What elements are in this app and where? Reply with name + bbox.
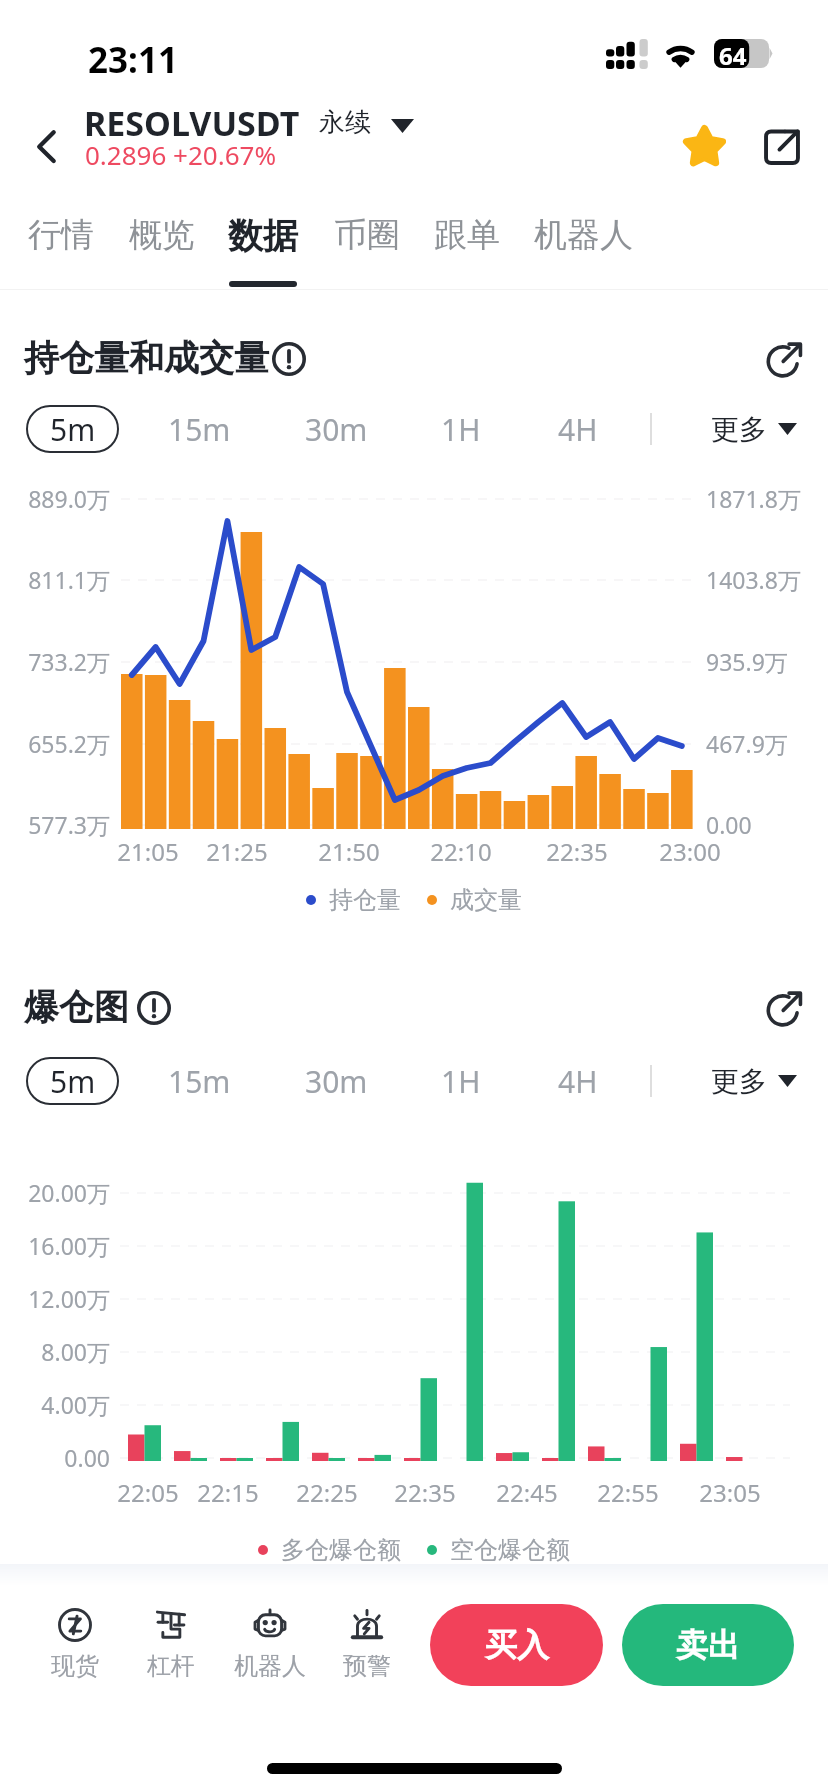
button[interactable]: 30m <box>286 405 386 453</box>
staticText: 15m <box>168 409 231 450</box>
staticText: 永续 <box>319 106 371 139</box>
staticText: 23:00 <box>640 835 740 868</box>
staticText: 4.00万 <box>0 1389 110 1420</box>
staticText: 22:55 <box>578 1476 678 1509</box>
button[interactable]: Open full chart <box>766 986 808 1028</box>
button[interactable]: 15m <box>149 1057 249 1105</box>
staticText: 0.00 <box>0 1442 110 1473</box>
staticText: 跟单 <box>434 214 500 256</box>
staticText: 币圈 <box>334 214 400 256</box>
button[interactable]: 30m <box>286 1057 386 1105</box>
staticText: 21:05 <box>98 835 198 868</box>
staticText: 机器人 <box>234 1651 306 1681</box>
staticText: 行情 <box>28 214 94 256</box>
staticText: 成交量 <box>450 885 522 915</box>
staticText: 64 <box>719 39 747 68</box>
button[interactable]: 卖出 <box>622 1604 794 1686</box>
staticText: 22:10 <box>411 835 511 868</box>
button[interactable]: 币圈 <box>320 200 413 290</box>
staticText: 21:25 <box>187 835 287 868</box>
button[interactable]: Info <box>137 991 171 1025</box>
button[interactable]: 行情 <box>14 200 108 290</box>
staticText: 数据 <box>228 214 298 258</box>
staticText: 预警 <box>343 1651 391 1681</box>
staticText: 机器人 <box>534 214 633 256</box>
staticText: 12.00万 <box>0 1283 110 1314</box>
staticText: 577.3万 <box>0 809 110 840</box>
staticText: 23:11 <box>88 36 178 84</box>
staticText: 22:35 <box>375 1476 475 1509</box>
button[interactable]: 杠杆 <box>123 1608 219 1688</box>
staticText: 30m <box>305 409 368 450</box>
staticText: 22:45 <box>477 1476 577 1509</box>
staticText: 持仓量 <box>329 885 401 915</box>
button[interactable]: 机器人 <box>519 200 648 290</box>
staticText: 现货 <box>51 1651 99 1681</box>
staticText: 爆仓图 <box>24 985 129 1029</box>
staticText: 1403.8万 <box>706 564 801 595</box>
staticText: 0.2896 +20.67% <box>85 137 277 172</box>
button[interactable]: 1H <box>411 405 511 453</box>
staticText: 22:25 <box>277 1476 377 1509</box>
staticText: 更多 <box>711 412 767 447</box>
button[interactable]: 跟单 <box>418 200 516 290</box>
button[interactable]: Info <box>272 342 306 376</box>
staticText: 概览 <box>129 214 195 256</box>
staticText: 22:05 <box>98 1476 198 1509</box>
button[interactable]: 数据 <box>213 200 312 290</box>
button[interactable]: Share <box>761 126 803 168</box>
staticText: 935.9万 <box>706 646 788 677</box>
staticText: 22:35 <box>527 835 627 868</box>
staticText: 买入 <box>485 1625 549 1665</box>
staticText: RESOLVUSDT <box>84 100 300 146</box>
button[interactable]: 预警 <box>319 1608 415 1688</box>
button[interactable]: Open full chart <box>766 337 808 379</box>
button[interactable]: 15m <box>149 405 249 453</box>
button[interactable]: Favorite <box>682 124 727 169</box>
button[interactable]: 现货 <box>27 1608 123 1688</box>
staticText: 1H <box>441 409 481 450</box>
staticText: 持仓量和成交量 <box>24 336 269 380</box>
staticText: 889.0万 <box>0 483 110 514</box>
staticText: 733.2万 <box>0 646 110 677</box>
staticText: 16.00万 <box>0 1230 110 1261</box>
button[interactable]: 1H <box>411 1057 511 1105</box>
button[interactable]: 更多 <box>711 405 797 453</box>
button[interactable]: 概览 <box>114 200 210 290</box>
staticText: 1H <box>441 1061 481 1102</box>
staticText: 23:05 <box>680 1476 780 1509</box>
staticText: 4H <box>558 1061 598 1102</box>
staticText: 467.9万 <box>706 728 788 759</box>
button[interactable]: Select contract type <box>391 118 414 133</box>
staticText: 1871.8万 <box>706 483 801 514</box>
button[interactable]: 机器人 <box>222 1608 318 1688</box>
button[interactable]: 更多 <box>711 1057 797 1105</box>
staticText: 30m <box>305 1061 368 1102</box>
staticText: 20.00万 <box>0 1177 110 1208</box>
staticText: 杠杆 <box>147 1651 195 1681</box>
staticText: 8.00万 <box>0 1336 110 1367</box>
staticText: 4H <box>558 409 598 450</box>
staticText: 15m <box>168 1061 231 1102</box>
staticText: 5m <box>50 1061 96 1102</box>
button[interactable]: 4H <box>528 1057 628 1105</box>
staticText: 更多 <box>711 1064 767 1099</box>
staticText: 多仓爆仓额 <box>281 1535 401 1565</box>
staticText: 811.1万 <box>0 564 110 595</box>
staticText: 5m <box>50 409 96 450</box>
staticText: 22:15 <box>178 1476 278 1509</box>
button[interactable]: 买入 <box>430 1604 603 1686</box>
button[interactable]: 5m <box>26 405 119 453</box>
staticText: 21:50 <box>299 835 399 868</box>
button[interactable]: 4H <box>528 405 628 453</box>
button[interactable]: Back <box>24 118 80 174</box>
staticText: 655.2万 <box>0 728 110 759</box>
button[interactable]: 5m <box>26 1057 119 1105</box>
staticText: 空仓爆仓额 <box>450 1535 570 1565</box>
staticText: 卖出 <box>676 1625 740 1665</box>
staticText: 0.00 <box>706 809 752 840</box>
